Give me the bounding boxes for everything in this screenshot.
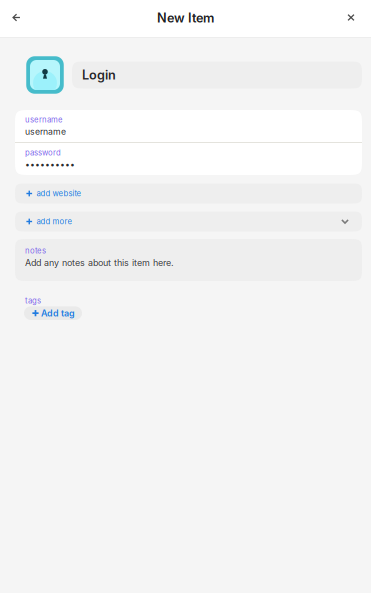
staticText: Add any notes about this item here. [25, 257, 174, 268]
staticText: tags [25, 296, 41, 305]
staticText: username [25, 126, 66, 137]
staticText: Login [82, 67, 116, 83]
staticText: Add tag [41, 308, 75, 319]
staticText: password [25, 148, 61, 157]
staticText: add more [36, 217, 72, 226]
button[interactable]: Add tag [24, 306, 82, 320]
staticText: add website [36, 189, 81, 198]
button[interactable]: add website [15, 183, 362, 203]
staticText: New Item [157, 10, 214, 26]
staticText: notes [25, 246, 46, 255]
button[interactable]: Close [331, 0, 371, 35]
staticText: •••••••••• [25, 159, 75, 170]
staticText: username [25, 115, 63, 124]
button[interactable]: Back [0, 0, 33, 35]
button[interactable]: add more [15, 211, 362, 231]
